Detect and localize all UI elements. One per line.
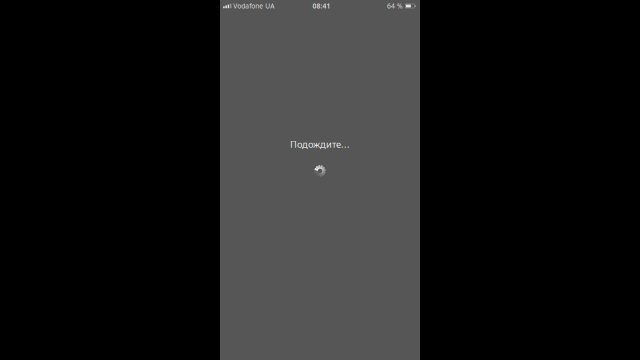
staticText: 64 %	[387, 2, 403, 10]
staticText: 08:41	[312, 2, 330, 10]
staticText: Vodafone UA	[233, 2, 274, 10]
staticText: Подождите...	[290, 138, 350, 150]
